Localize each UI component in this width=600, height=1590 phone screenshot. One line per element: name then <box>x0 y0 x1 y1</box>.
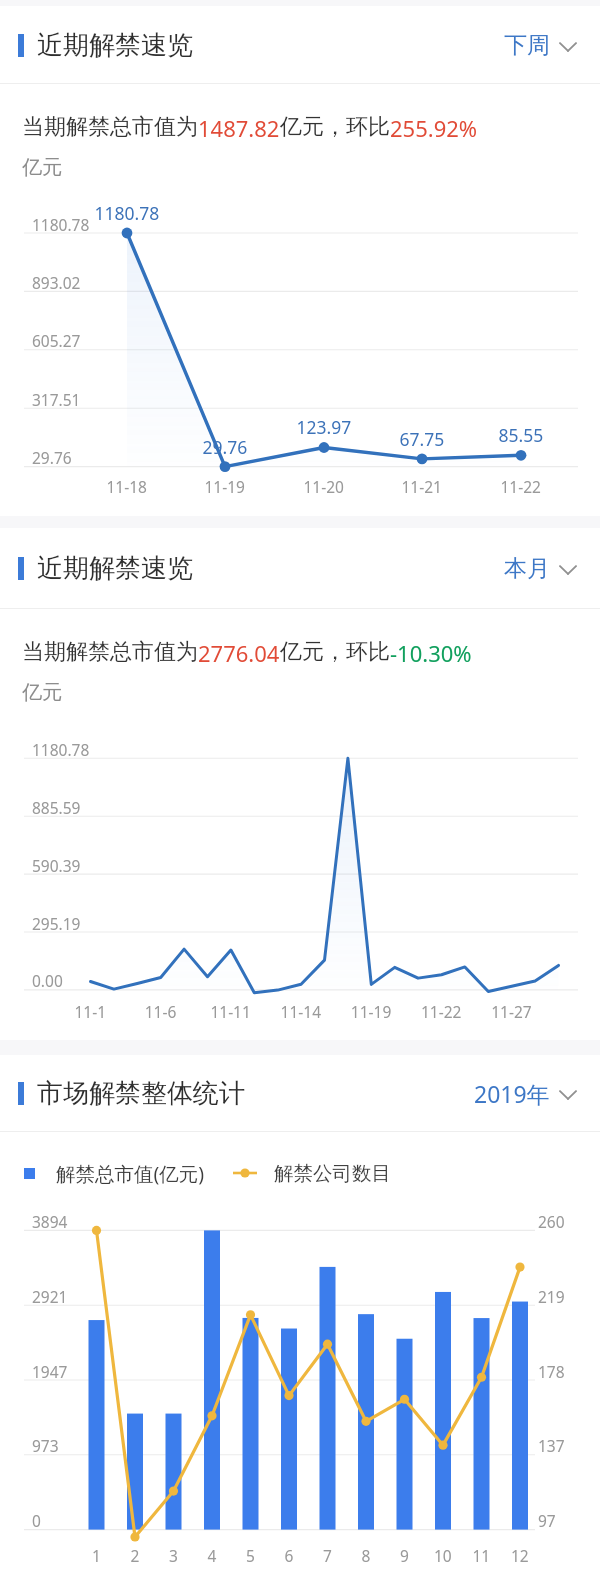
staticText: -10.30% <box>390 638 472 668</box>
staticText: 当期解禁总市值为 <box>22 113 198 141</box>
button[interactable]: 下周 <box>490 21 591 70</box>
staticText: 2776.04 <box>198 638 280 668</box>
staticText: 解禁总市值(亿元) <box>56 1160 205 1187</box>
staticText: 解禁公司数目 <box>274 1161 391 1186</box>
staticText: 近期解禁速览 <box>37 552 193 585</box>
staticText: 1487.82 <box>198 113 280 143</box>
staticText: 亿元， <box>280 113 346 141</box>
staticText: 亿元 <box>22 680 62 705</box>
staticText: 近期解禁速览 <box>37 29 193 62</box>
staticText: 2019年 <box>474 1078 550 1109</box>
staticText: 本月 <box>504 554 550 583</box>
staticText: 下周 <box>504 31 550 60</box>
staticText: 亿元 <box>22 155 62 180</box>
staticText: 亿元， <box>280 638 346 666</box>
other: Change period <box>559 1085 577 1102</box>
staticText: 市场解禁整体统计 <box>37 1077 245 1110</box>
button[interactable]: 本月 <box>490 544 591 593</box>
staticText: 环比 <box>346 113 390 141</box>
other: Change period <box>559 37 577 54</box>
staticText: 255.92% <box>390 113 478 143</box>
staticText: 当期解禁总市值为 <box>22 638 198 666</box>
staticText: 环比 <box>346 638 390 666</box>
other: Change period <box>559 560 577 577</box>
button[interactable]: 2019年 <box>460 1068 591 1119</box>
